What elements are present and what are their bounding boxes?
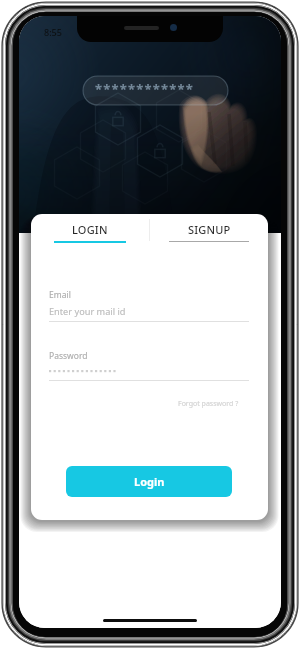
staticText: Email [49,289,71,301]
button[interactable]: Login [66,466,232,497]
button[interactable]: Forgot password ? [178,399,239,409]
staticText: Login [134,474,165,489]
staticText: Password [49,350,88,362]
staticText: Forgot password ? [178,399,239,409]
button[interactable]: SIGNUP [149,214,268,258]
staticText: ************ [95,80,194,98]
staticText: LOGIN [72,222,108,237]
button[interactable]: LOGIN [31,214,149,258]
staticText: 8:55 [44,26,62,38]
staticText: SIGNUP [188,222,231,237]
staticText: Enter your mail id [49,305,126,318]
